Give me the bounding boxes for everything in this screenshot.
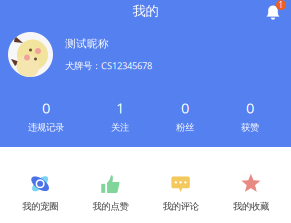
staticText: 0	[246, 98, 254, 118]
button[interactable]: 我的宠圈	[5, 173, 75, 212]
staticText: 我的收藏	[233, 201, 269, 212]
button[interactable]: 我的评论	[145, 173, 216, 212]
staticText: 我的	[132, 3, 158, 19]
staticText: 1	[116, 98, 124, 118]
staticText: 1	[278, 0, 283, 10]
button[interactable]: 0	[240, 98, 260, 133]
staticText: 0	[181, 98, 189, 118]
staticText: 违规记录	[28, 121, 64, 133]
button[interactable]: 通知	[264, 2, 286, 20]
button[interactable]: 我的收藏	[216, 173, 286, 212]
button[interactable]: 我的点赞	[75, 173, 145, 212]
staticText: 我的点赞	[92, 201, 128, 212]
staticText: 我的宠圈	[22, 201, 58, 212]
staticText: 测试昵称	[65, 37, 109, 50]
button[interactable]: 0	[27, 98, 65, 133]
staticText: 犬牌号：CS12345678	[65, 59, 152, 72]
staticText: 关注	[111, 121, 129, 133]
button[interactable]: 0	[175, 98, 195, 133]
staticText: 粉丝	[176, 121, 194, 133]
staticText: 获赞	[241, 121, 259, 133]
staticText: 我的评论	[163, 201, 199, 212]
staticText: 0	[42, 98, 50, 118]
button[interactable]: 1	[110, 98, 130, 133]
